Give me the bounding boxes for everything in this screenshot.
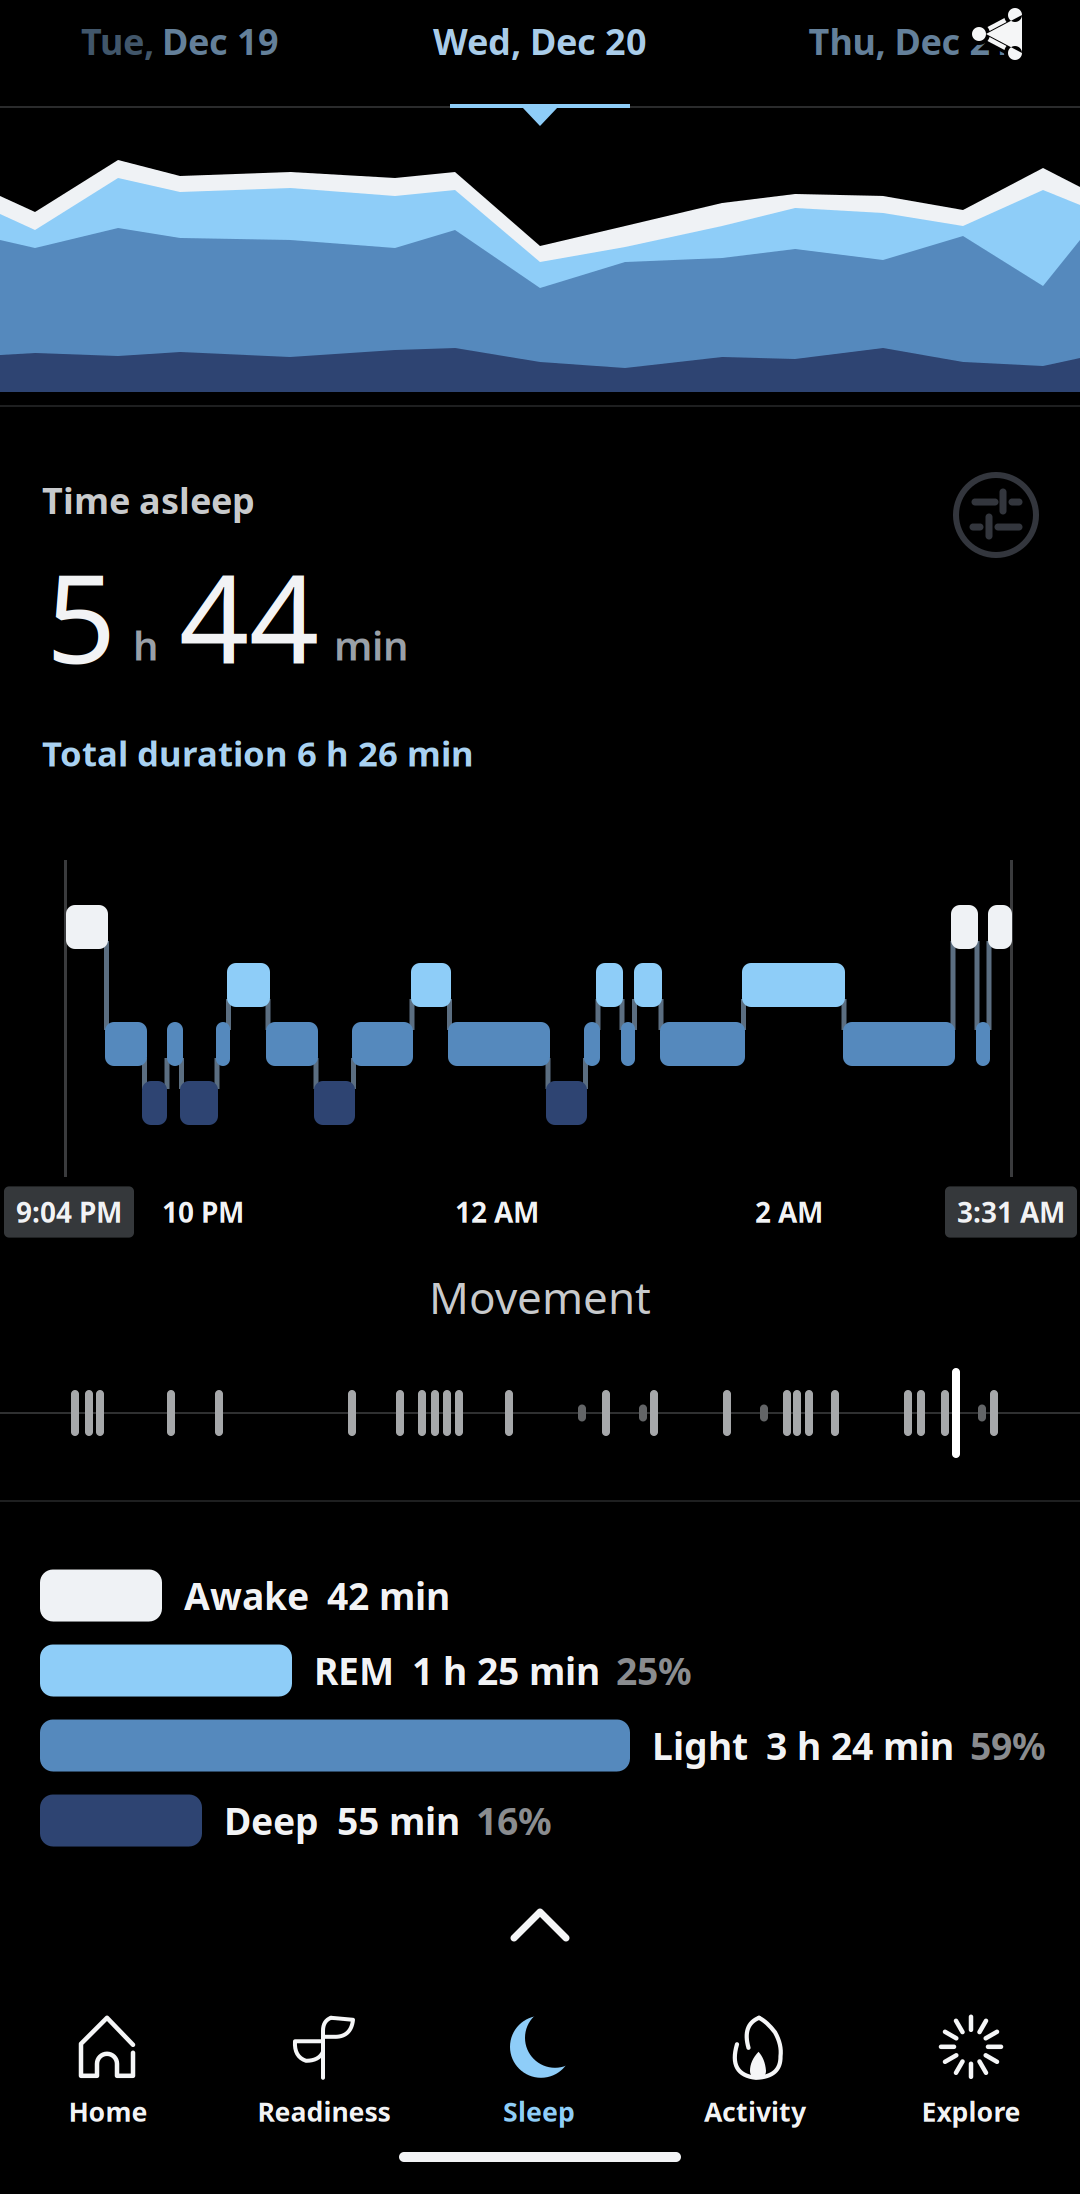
button[interactable]: Collapse (500, 1905, 580, 1945)
button[interactable]: Sleep (503, 2015, 575, 2129)
staticText: Awake (184, 1571, 309, 1620)
staticText: Activity (704, 2094, 806, 2129)
button[interactable]: Explore (921, 2015, 1020, 2129)
staticText: 16% (476, 1796, 552, 1845)
button[interactable]: Wed, Dec 20 (433, 17, 647, 65)
staticText: 44 (179, 535, 319, 697)
button[interactable]: Readiness (257, 2015, 390, 2129)
staticText: Readiness (257, 2094, 390, 2129)
staticText: Deep (224, 1796, 319, 1845)
staticText: Movement (429, 1268, 651, 1326)
staticText: 25% (616, 1646, 692, 1695)
button[interactable]: Tue, (81, 17, 279, 65)
staticText: 9:04 PM (16, 1193, 122, 1231)
staticText: 2 AM (755, 1193, 823, 1231)
staticText: Thu, Dec 21 (808, 17, 1011, 65)
staticText: Home (68, 2094, 147, 2129)
button[interactable]: Activity (704, 2015, 806, 2129)
staticText: h (133, 618, 159, 671)
staticText: 1 h 25 min (412, 1646, 600, 1695)
staticText: Sleep (503, 2094, 575, 2129)
staticText: min (334, 618, 409, 671)
staticText: 12 AM (455, 1193, 539, 1231)
staticText: Explore (921, 2094, 1020, 2129)
staticText: 10 PM (162, 1193, 244, 1231)
staticText: 3 h 24 min (766, 1721, 954, 1770)
staticText: Dec 19 (162, 17, 279, 65)
button[interactable]: Home (68, 2015, 147, 2129)
staticText: 42 min (327, 1571, 450, 1620)
button[interactable]: Share (969, 6, 1025, 62)
staticText: Wed, Dec 20 (433, 17, 647, 65)
staticText: REM (314, 1646, 394, 1695)
button[interactable]: Sleep settings (951, 470, 1041, 560)
staticText: 3:31 AM (957, 1193, 1065, 1231)
staticText: Time asleep (42, 476, 255, 524)
staticText: Total duration 6 h 26 min (42, 730, 474, 776)
staticText: 5 (46, 535, 116, 697)
staticText: 55 min (337, 1796, 460, 1845)
staticText: 59% (970, 1721, 1046, 1770)
button[interactable]: Thu, Dec 21 (808, 17, 1011, 65)
staticText: Light (652, 1721, 748, 1770)
staticText: Tue, (81, 17, 154, 65)
